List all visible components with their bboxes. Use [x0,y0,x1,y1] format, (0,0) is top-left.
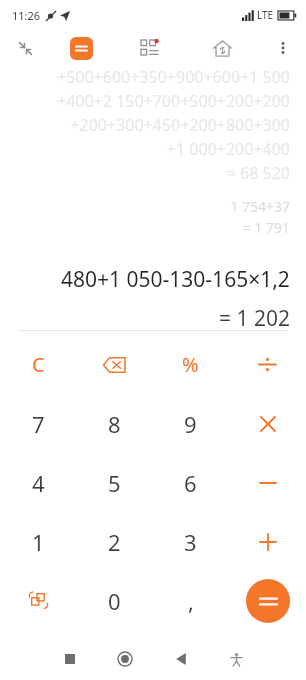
other: Minus [260,476,276,490]
staticText: 11:26 [12,8,41,23]
button[interactable]: % [152,335,229,394]
button[interactable]: , [152,571,229,630]
button[interactable]: Accessibility [222,645,250,673]
staticText: +500+600+350+900+600+1 500 [57,66,290,88]
staticText: +400+2 150+700+500+200+200 [57,90,290,112]
staticText: % [182,351,199,378]
staticText: , [188,586,194,616]
button[interactable]: C [0,335,76,394]
button[interactable]: Multiply [229,394,306,453]
other: Unit converter [29,591,48,610]
staticText: = 68 520 [226,162,290,184]
staticText: 5 [108,468,121,498]
other: Divide [259,356,276,373]
staticText: 1 754+37 [230,197,290,216]
button[interactable]: Calculator [70,37,93,60]
other: Plus [260,534,276,550]
staticText: C [32,351,45,378]
button[interactable]: Equals [229,571,306,630]
button[interactable]: Equals [246,579,290,623]
staticText: 2 [108,527,121,557]
button[interactable]: Home [111,645,139,673]
staticText: LTE [257,8,274,22]
staticText: 9 [184,409,197,439]
button[interactable]: Divide [229,335,306,394]
staticText: 4 [32,468,45,498]
staticText: 6 [184,468,197,498]
staticText: = 1 202 [219,304,290,330]
staticText: = 1 791 [242,218,290,237]
other: Multiply [261,417,275,431]
button[interactable]: 3 [152,512,229,571]
button[interactable]: 2 [76,512,152,571]
staticText: +1 000+200+400 [166,138,290,160]
button[interactable]: Loan calculator [206,32,238,64]
staticText: +200+300+450+200+800+300 [70,114,290,136]
button[interactable]: Plus [229,512,306,571]
button[interactable]: Minus [229,453,306,512]
button[interactable]: Recents [56,645,84,673]
button[interactable]: 7 [0,394,76,453]
button[interactable]: Unit converter [0,571,76,630]
button[interactable]: 4 [0,453,76,512]
staticText: 7 [32,409,45,439]
staticText: 3 [184,527,197,557]
button[interactable]: Backspace [76,335,152,394]
button[interactable]: 8 [76,394,152,453]
button[interactable]: Tools [134,33,164,63]
button[interactable]: 5 [76,453,152,512]
other: Backspace [103,357,125,373]
button[interactable]: Collapse [10,33,40,63]
button[interactable]: 6 [152,453,229,512]
staticText: 0 [108,586,121,616]
staticText: 480+1 050-130-165×1,2 [61,265,290,294]
button[interactable]: More options [268,33,298,63]
staticText: 8 [108,409,121,439]
button[interactable]: 9 [152,394,229,453]
button[interactable]: Back [167,645,195,673]
staticText: 1 [32,527,45,557]
button[interactable]: 1 [0,512,76,571]
button[interactable]: 0 [76,571,152,630]
